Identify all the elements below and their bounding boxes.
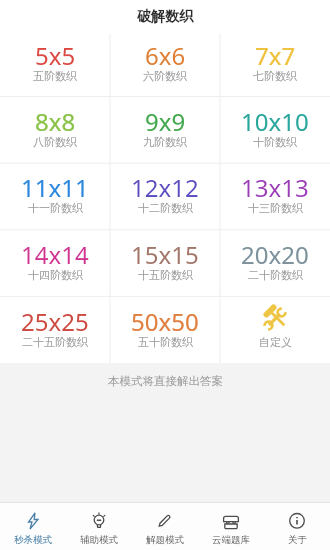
button[interactable]: 20x20 [220, 229, 330, 296]
button[interactable]: 7x7 [220, 30, 330, 96]
staticText: 解题模式 [146, 534, 184, 546]
button[interactable]: 15x15 [110, 229, 220, 296]
staticText: 秒杀模式 [14, 534, 52, 546]
staticText: 九阶数织 [143, 135, 187, 149]
staticText: 8x8 [35, 105, 76, 138]
staticText: 12x12 [131, 171, 199, 204]
button[interactable]: 自定义 [220, 296, 330, 363]
staticText: 十三阶数织 [248, 201, 303, 215]
staticText: 9x9 [145, 105, 186, 138]
staticText: 二十五阶数织 [22, 335, 88, 349]
staticText: 破解数织 [137, 8, 193, 26]
staticText: 5x5 [35, 39, 76, 72]
staticText: 六阶数织 [143, 69, 187, 83]
staticText: 本模式将直接解出答案 [108, 374, 223, 388]
staticText: 13x13 [241, 171, 309, 204]
staticText: 十二阶数织 [138, 201, 193, 215]
button[interactable]: 5x5 [0, 30, 110, 96]
staticText: 11x11 [21, 171, 89, 204]
staticText: 14x14 [21, 238, 89, 271]
staticText: 50x50 [131, 305, 199, 338]
button[interactable]: 50x50 [110, 296, 220, 363]
button[interactable]: 25x25 [0, 296, 110, 363]
staticText: 十阶数织 [253, 135, 297, 149]
staticText: 7x7 [255, 39, 296, 72]
button[interactable]: 关于 [264, 503, 330, 550]
staticText: 十四阶数织 [28, 268, 83, 282]
button[interactable]: 14x14 [0, 229, 110, 296]
staticText: 七阶数织 [253, 69, 297, 83]
button[interactable]: 6x6 [110, 30, 220, 96]
button[interactable]: 解题模式 [132, 503, 198, 550]
staticText: 25x25 [21, 305, 89, 338]
staticText: 十一阶数织 [28, 201, 83, 215]
staticText: 15x15 [131, 238, 199, 271]
button[interactable]: 10x10 [220, 96, 330, 162]
staticText: 辅助模式 [80, 534, 118, 546]
staticText: 关于 [288, 534, 307, 546]
staticText: 云端题库 [212, 534, 250, 546]
staticText: 自定义 [259, 335, 292, 349]
staticText: 八阶数织 [33, 135, 77, 149]
button[interactable]: 云端题库 [198, 503, 264, 550]
staticText: 十五阶数织 [138, 268, 193, 282]
staticText: 10x10 [241, 105, 309, 138]
staticText: 二十阶数织 [248, 268, 303, 282]
button[interactable]: 8x8 [0, 96, 110, 162]
staticText: 20x20 [241, 238, 309, 271]
button[interactable]: 12x12 [110, 162, 220, 229]
button[interactable]: 辅助模式 [66, 503, 132, 550]
staticText: 五阶数织 [33, 69, 77, 83]
button[interactable]: 9x9 [110, 96, 220, 162]
button[interactable]: 11x11 [0, 162, 110, 229]
button[interactable]: 13x13 [220, 162, 330, 229]
staticText: 五十阶数织 [138, 335, 193, 349]
button[interactable]: 秒杀模式 [0, 503, 66, 550]
staticText: 6x6 [145, 39, 186, 72]
